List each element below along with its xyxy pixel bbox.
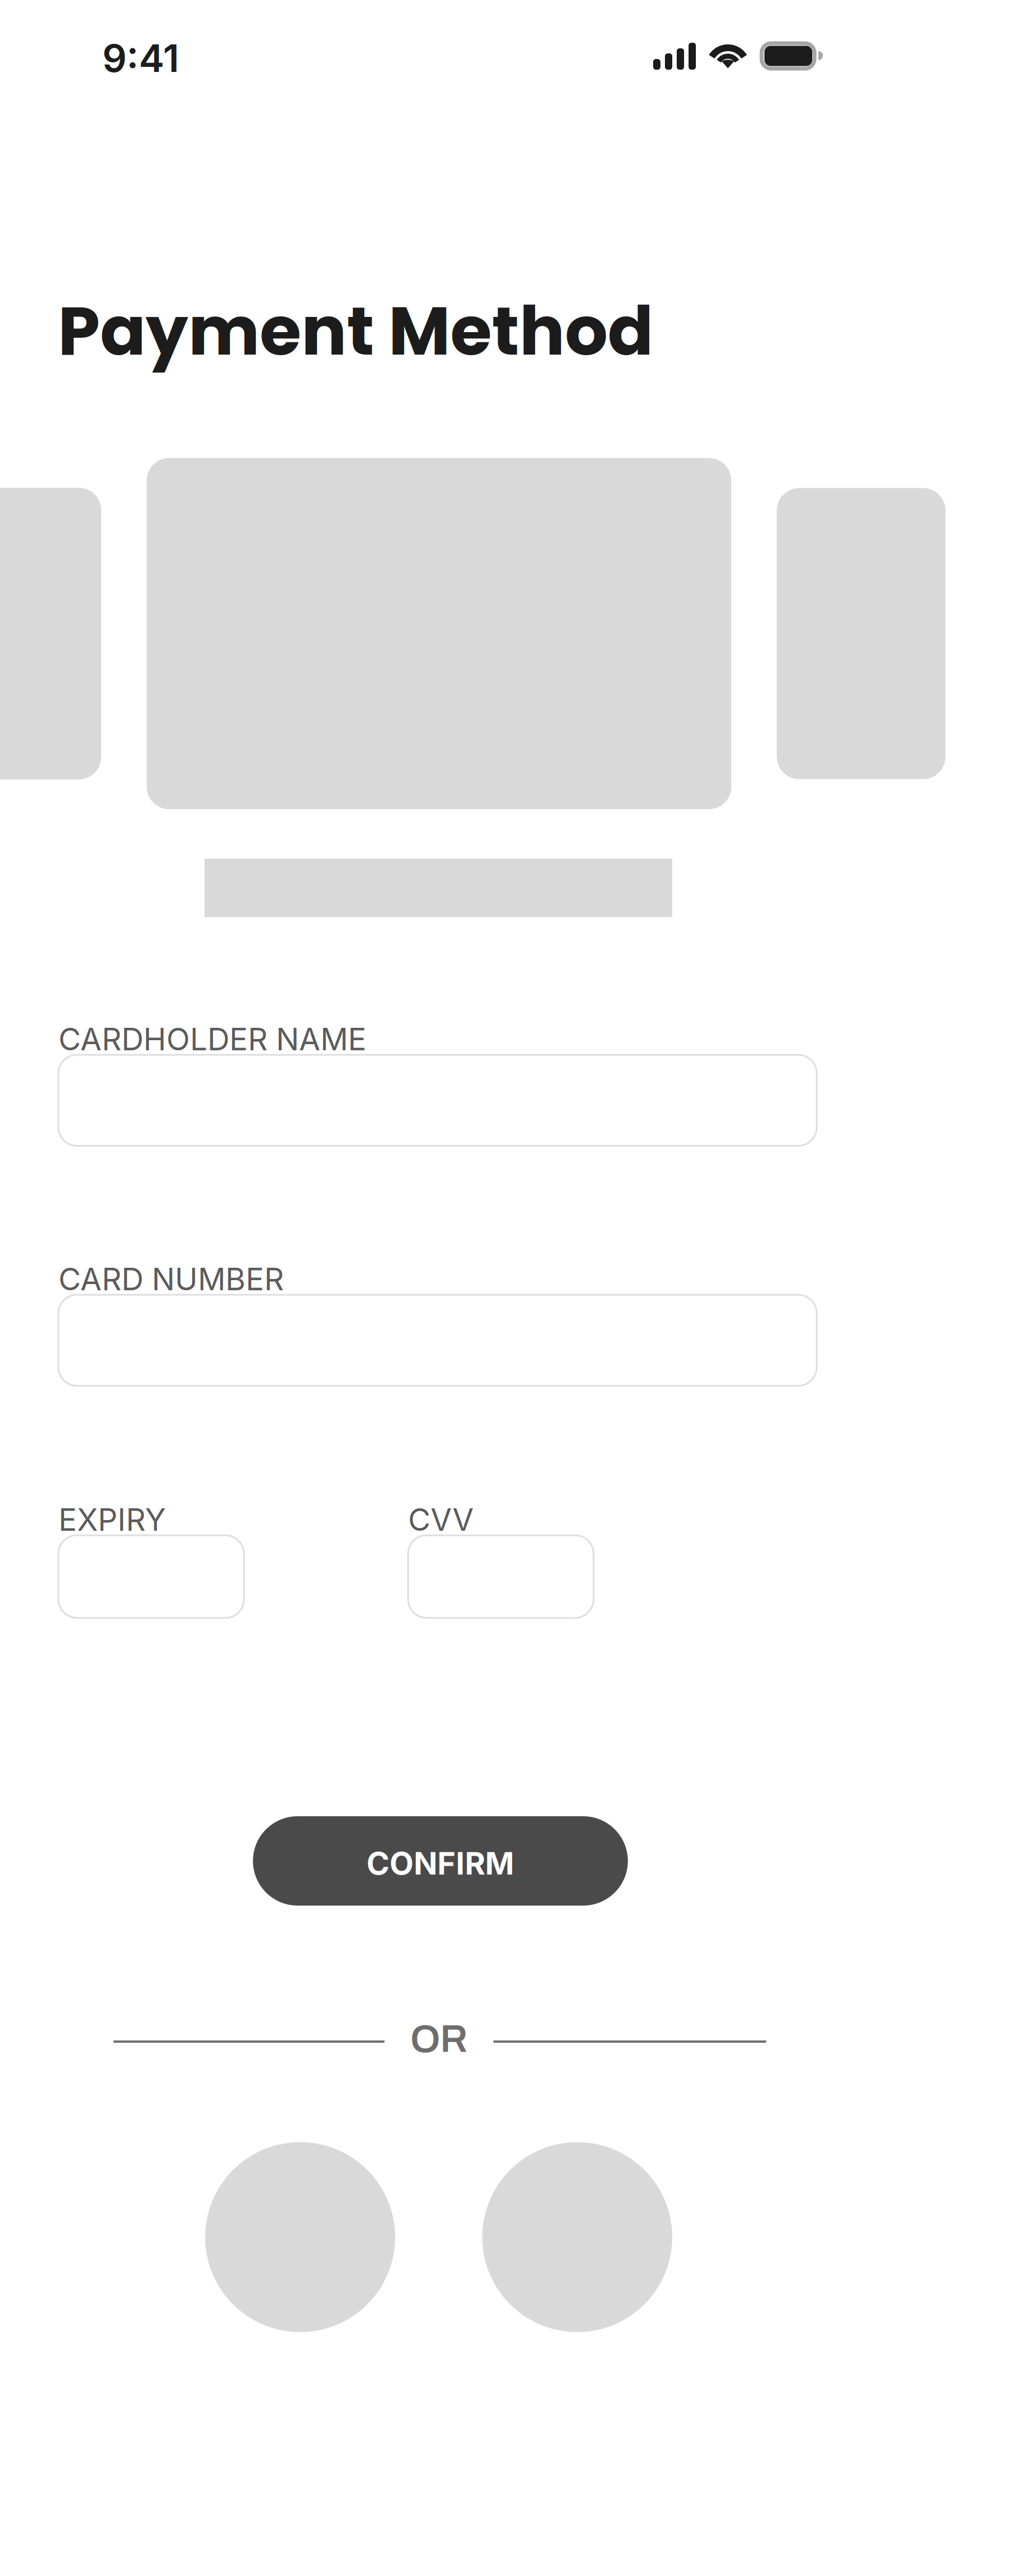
staticText: CONFIRM [366, 1844, 514, 1882]
staticText: 9:41 [102, 35, 179, 81]
button[interactable]: EXPIRY [58, 1504, 244, 1618]
button[interactable]: CVV [408, 1504, 594, 1618]
staticText: CVV [408, 1501, 474, 1538]
button[interactable]: CONFIRM [253, 1816, 628, 1906]
staticText: CARDHOLDER NAME [58, 1020, 366, 1058]
button[interactable]: Next card [777, 488, 945, 779]
button[interactable]: Pay with PayPal [482, 2142, 672, 2332]
staticText: Payment Method [58, 284, 653, 378]
button[interactable]: CARD NUMBER [58, 1263, 817, 1386]
staticText: CARD NUMBER [58, 1260, 284, 1298]
button[interactable]: Pay with Apple Pay [205, 2142, 395, 2332]
button[interactable]: CARDHOLDER NAME [58, 1023, 817, 1146]
staticText: EXPIRY [58, 1501, 166, 1538]
staticText: OR [410, 2019, 468, 2060]
